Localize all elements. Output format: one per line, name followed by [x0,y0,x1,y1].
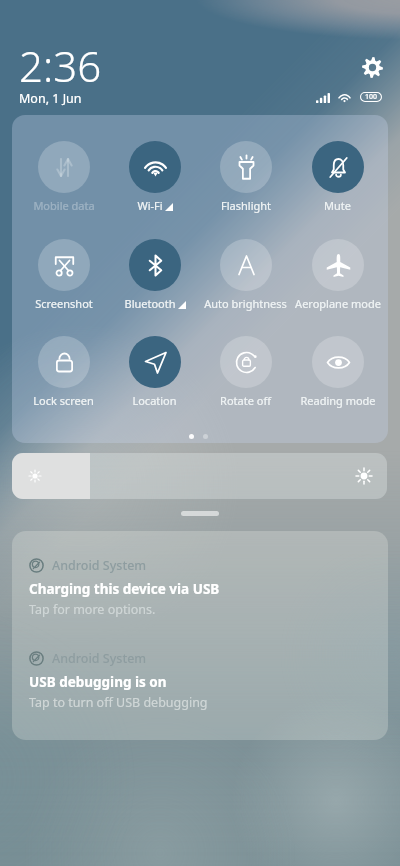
button[interactable]: Reading mode [292,336,383,408]
button[interactable]: Auto brightness [200,239,291,311]
staticText: Screenshot [35,296,93,311]
staticText: Tap for more options. [29,601,156,618]
button[interactable]: Brightness [12,453,387,499]
staticText: 100 [365,92,378,102]
staticText: Charging this device via USB [29,580,220,598]
staticText: Location [132,393,177,408]
button[interactable]: Mute [292,141,383,213]
staticText: 2:36 [19,37,102,94]
staticText: Reading mode [300,393,376,408]
button[interactable]: Wi-Fi [109,141,200,213]
staticText: Mon, 1 Jun [19,90,82,107]
button[interactable]: Settings [355,50,389,84]
staticText: Android System [52,557,147,574]
button[interactable]: Mobile data [18,141,109,213]
staticText: Wi-Fi [137,198,163,213]
staticText: Android System [52,650,147,667]
staticText: Aeroplane mode [295,296,381,311]
staticText: Mute [324,198,351,213]
button[interactable]: Flashlight [200,141,291,213]
staticText: USB debugging is on [29,673,167,691]
staticText: Auto brightness [204,296,287,311]
button[interactable]: Location [109,336,200,408]
button[interactable]: Aeroplane mode [292,239,383,311]
button[interactable]: Android System [12,547,388,622]
staticText: Tap to turn off USB debugging [29,694,208,711]
staticText: Mobile data [33,198,95,213]
button[interactable]: Screenshot [18,239,109,311]
staticText: Bluetooth [124,296,176,311]
button[interactable]: Rotate off [200,336,291,408]
button[interactable]: Android System [12,640,388,715]
staticText: Lock screen [33,393,94,408]
button[interactable]: Bluetooth [109,239,200,311]
staticText: Flashlight [221,198,271,213]
button[interactable]: Lock screen [18,336,109,408]
staticText: Rotate off [220,393,271,408]
